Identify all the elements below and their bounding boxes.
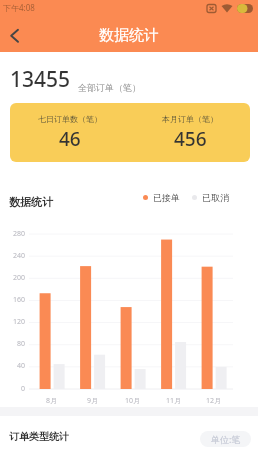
staticText: 10月 <box>125 396 141 406</box>
staticText: 46 <box>59 126 81 152</box>
staticText: 数据统计 <box>9 195 53 209</box>
staticText: 456 <box>174 126 207 152</box>
button[interactable]: 七日订单数（笔） <box>10 103 250 162</box>
button[interactable]: 单位:笔 <box>200 431 251 447</box>
staticText: 全部订单（笔） <box>78 82 141 93</box>
staticText: 13455 <box>10 65 71 94</box>
button[interactable] <box>0 20 28 52</box>
staticText: 本月订单（笔） <box>162 114 218 124</box>
staticText: 0 <box>21 384 26 394</box>
staticText: 数据统计 <box>99 26 159 45</box>
staticText: 200 <box>13 273 26 283</box>
staticText: 280 <box>13 229 26 239</box>
staticText: 订单类型统计 <box>9 430 69 443</box>
staticText: 120 <box>13 317 26 327</box>
staticText: 单位:笔 <box>211 433 241 445</box>
staticText: 40 <box>17 361 26 371</box>
staticText: 12月 <box>206 396 222 406</box>
staticText: 160 <box>13 295 26 305</box>
staticText: 11月 <box>166 396 182 406</box>
staticText: 9月 <box>87 396 99 406</box>
staticText: 七日订单数（笔） <box>38 114 102 124</box>
staticText: 8月 <box>46 396 58 406</box>
staticText: 80 <box>17 339 26 349</box>
staticText: 240 <box>13 251 26 261</box>
staticText: 已取消 <box>202 192 229 203</box>
staticText: 已接单 <box>153 192 180 203</box>
staticText: 下午4:08 <box>3 2 35 13</box>
